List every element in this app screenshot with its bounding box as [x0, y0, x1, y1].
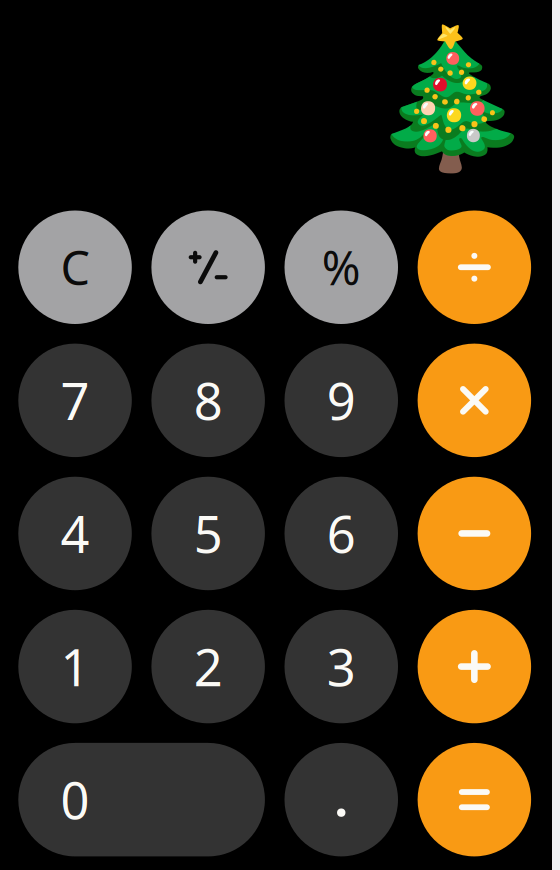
staticText: 2 — [194, 633, 223, 700]
staticText: 6 — [327, 500, 356, 567]
button[interactable]: Decimal point — [284, 743, 398, 856]
staticText: 5 — [194, 500, 223, 567]
staticText: 9 — [327, 367, 356, 434]
button[interactable]: 9 — [284, 344, 398, 457]
button[interactable]: Subtract — [418, 477, 531, 590]
button[interactable]: 2 — [151, 610, 265, 723]
button[interactable]: Divide — [418, 210, 531, 324]
button[interactable]: Multiply — [418, 344, 531, 457]
button[interactable]: 5 — [151, 477, 265, 590]
staticText: % — [322, 236, 361, 298]
button[interactable]: 7 — [18, 344, 132, 457]
button[interactable]: 3 — [284, 610, 398, 723]
button[interactable]: 1 — [18, 610, 132, 723]
staticText: 8 — [194, 367, 223, 434]
staticText: 3 — [327, 633, 356, 700]
staticText: 0 — [60, 766, 89, 833]
staticText: C — [60, 236, 89, 298]
button[interactable]: Equals — [418, 743, 531, 856]
button[interactable]: 4 — [18, 477, 132, 590]
button[interactable]: 8 — [151, 344, 265, 457]
staticText: 4 — [60, 500, 89, 567]
staticText: 🎄 — [367, 22, 535, 176]
button[interactable]: Plus minus — [151, 210, 265, 324]
button[interactable]: 0 — [18, 743, 265, 856]
button[interactable]: Add — [418, 610, 531, 723]
button[interactable]: C — [18, 210, 132, 324]
staticText: 1 — [60, 633, 89, 700]
staticText: 7 — [60, 367, 89, 434]
button[interactable]: % — [284, 210, 398, 324]
button[interactable]: 6 — [284, 477, 398, 590]
